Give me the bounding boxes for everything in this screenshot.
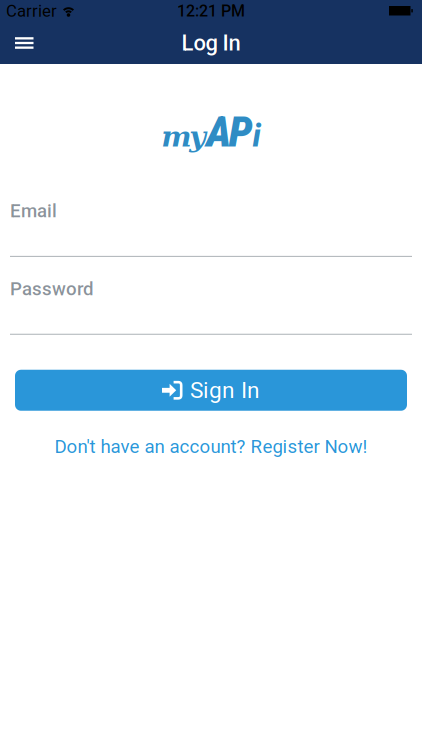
staticText: Don't have an account? Register Now!: [54, 436, 367, 458]
staticText: i: [253, 118, 261, 154]
button[interactable]: Sign In: [15, 370, 407, 411]
button[interactable]: [0, 23, 45, 63]
staticText: Log In: [181, 30, 240, 56]
staticText: Password: [10, 278, 94, 300]
staticText: Sign In: [190, 377, 260, 404]
button[interactable]: Don't have an account? Register Now!: [0, 436, 422, 458]
staticText: 12:21 PM: [177, 2, 245, 20]
staticText: my: [161, 120, 206, 153]
staticText: Carrier: [6, 1, 57, 21]
staticText: AP: [206, 107, 253, 157]
staticText: Email: [10, 200, 57, 222]
